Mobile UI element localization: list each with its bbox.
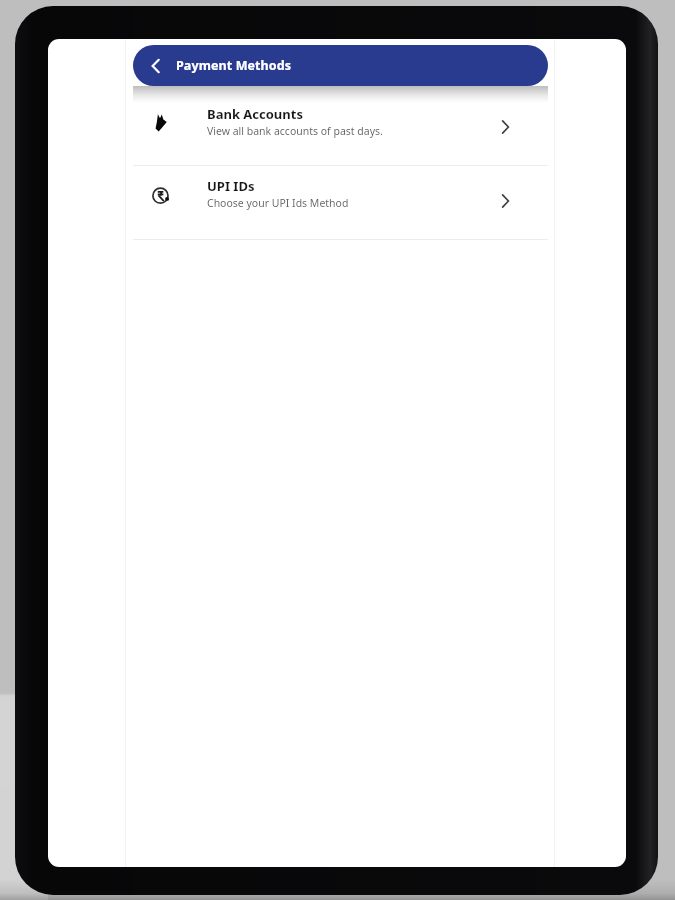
staticText: View all bank accounts of past days.	[207, 124, 383, 138]
button[interactable]: Back	[133, 45, 176, 86]
button[interactable]: UPI IDs	[125, 166, 555, 239]
button[interactable]: Back	[133, 45, 548, 86]
staticText: UPI IDs	[207, 177, 255, 195]
staticText: Choose your UPI Ids Method	[207, 196, 349, 210]
staticText: Bank Accounts	[207, 105, 303, 123]
staticText: Payment Methods	[176, 57, 292, 74]
button[interactable]: Bank Accounts	[125, 92, 555, 165]
